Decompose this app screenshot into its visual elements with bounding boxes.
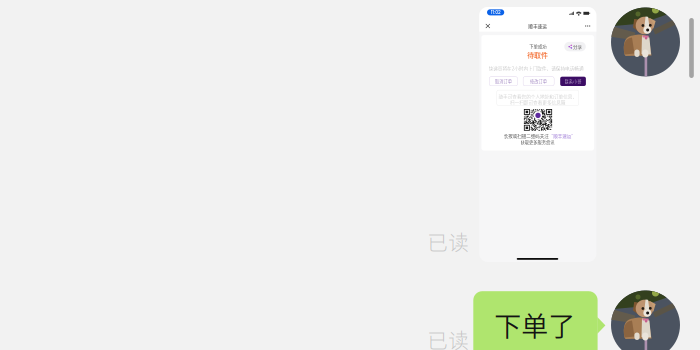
staticText: 已读: [427, 227, 469, 256]
staticText: 已读: [427, 325, 469, 350]
button[interactable]: 关闭: [504, 115, 592, 203]
staticText: 下单了: [494, 305, 575, 344]
staticText: 11:02: [570, 28, 651, 71]
